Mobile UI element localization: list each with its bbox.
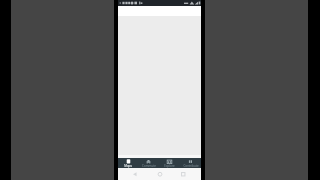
button[interactable]: Contribute bbox=[180, 158, 201, 168]
staticText: Explore bbox=[164, 164, 175, 168]
staticText: Contribute bbox=[183, 164, 199, 168]
button[interactable]: Explore bbox=[159, 158, 180, 168]
staticText: Maps bbox=[124, 164, 132, 168]
staticText: Commute bbox=[142, 164, 156, 168]
other: Explore bbox=[167, 159, 172, 164]
other: Commute bbox=[146, 159, 151, 164]
button[interactable]: Maps bbox=[118, 158, 138, 168]
button[interactable]: Commute bbox=[138, 158, 159, 168]
other: Contribute bbox=[188, 159, 193, 164]
other: Maps bbox=[126, 159, 131, 164]
